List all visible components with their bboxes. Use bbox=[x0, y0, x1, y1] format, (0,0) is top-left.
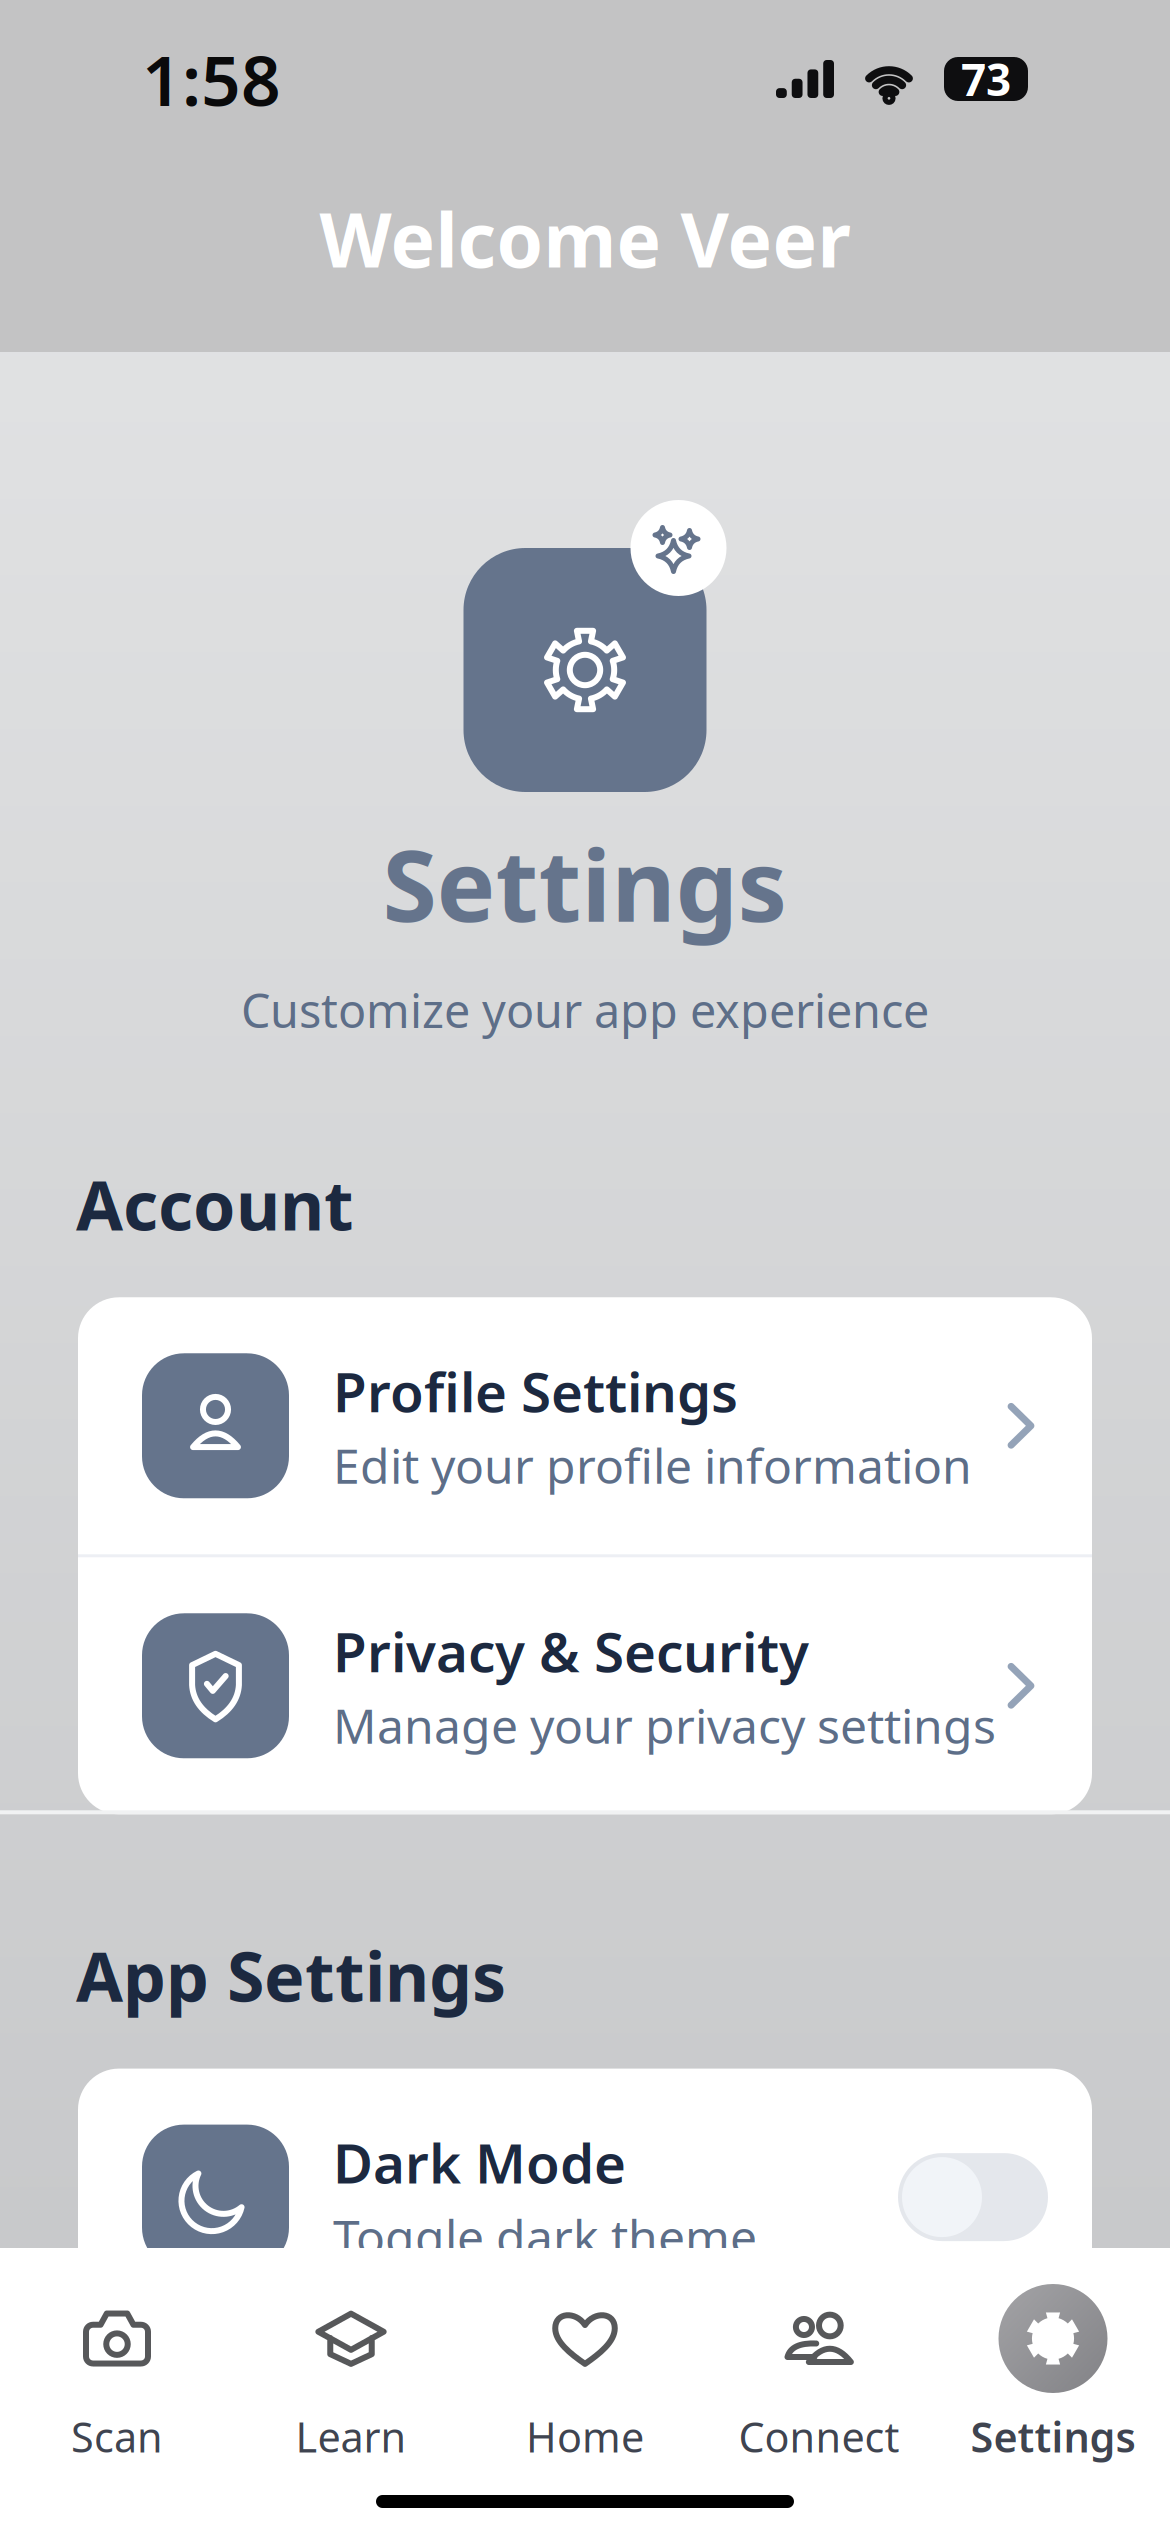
button[interactable]: Connect bbox=[702, 2284, 936, 2464]
button[interactable]: Dark Mode bbox=[78, 2069, 1092, 2326]
staticText: 1:58 bbox=[142, 33, 281, 125]
staticText: 73 bbox=[961, 50, 1011, 108]
staticText: Home bbox=[526, 2409, 644, 2464]
staticText: Settings bbox=[970, 2409, 1135, 2464]
button[interactable]: Profile Settings bbox=[78, 1297, 1092, 1554]
staticText: Toggle dark theme bbox=[333, 2204, 757, 2268]
staticText: Profile Settings bbox=[333, 1355, 738, 1427]
staticText: Dark Mode bbox=[333, 2126, 626, 2198]
staticText: Welcome Veer bbox=[319, 189, 850, 288]
staticText: Edit your profile information bbox=[333, 1433, 972, 1497]
staticText: Learn bbox=[295, 2409, 406, 2464]
staticText: Notifications bbox=[333, 2386, 675, 2458]
staticText: Connect bbox=[738, 2409, 899, 2464]
staticText: Manage your privacy settings bbox=[333, 1693, 996, 1757]
button[interactable]: Settings bbox=[936, 2284, 1170, 2464]
button[interactable]: Notifications bbox=[78, 2329, 1092, 2532]
staticText: Customize your app experience bbox=[241, 979, 929, 1041]
staticText: Manage notifications bbox=[333, 2464, 808, 2528]
staticText: Settings bbox=[382, 818, 787, 949]
staticText: App Settings bbox=[76, 1930, 506, 2021]
staticText: Scan bbox=[71, 2409, 163, 2464]
button[interactable]: Scan bbox=[0, 2284, 234, 2464]
button[interactable]: Home bbox=[468, 2284, 702, 2464]
button[interactable]: Learn bbox=[234, 2284, 468, 2464]
staticText: Account bbox=[76, 1159, 354, 1249]
button[interactable]: Privacy & Security bbox=[78, 1557, 1092, 1814]
staticText: Privacy & Security bbox=[333, 1615, 809, 1687]
